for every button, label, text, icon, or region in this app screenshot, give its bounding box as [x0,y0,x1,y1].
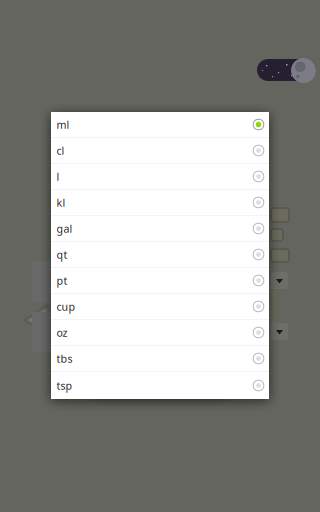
staticText: cl [56,143,64,158]
staticText: pt [56,273,67,288]
staticText: tsp [56,378,72,393]
staticText: qt [56,247,67,262]
button[interactable]: gal [51,216,269,242]
staticText: l [56,169,59,184]
staticText: kl [56,195,65,210]
button[interactable]: cl [51,138,269,164]
staticText: cup [56,299,75,314]
button[interactable]: qt [51,242,269,268]
button[interactable]: pt [51,268,269,294]
button[interactable]: cup [51,294,269,320]
button[interactable]: oz [51,320,269,346]
button[interactable]: tsp [51,372,269,399]
staticText: ml [56,117,69,132]
button[interactable]: tbs [51,346,269,372]
button[interactable]: l [51,164,269,190]
staticText: oz [56,325,67,340]
staticText: gal [56,221,72,236]
staticText: tbs [56,351,72,366]
button[interactable]: Night mode [256,57,317,84]
button[interactable]: ml [51,112,269,138]
button[interactable]: kl [51,190,269,216]
